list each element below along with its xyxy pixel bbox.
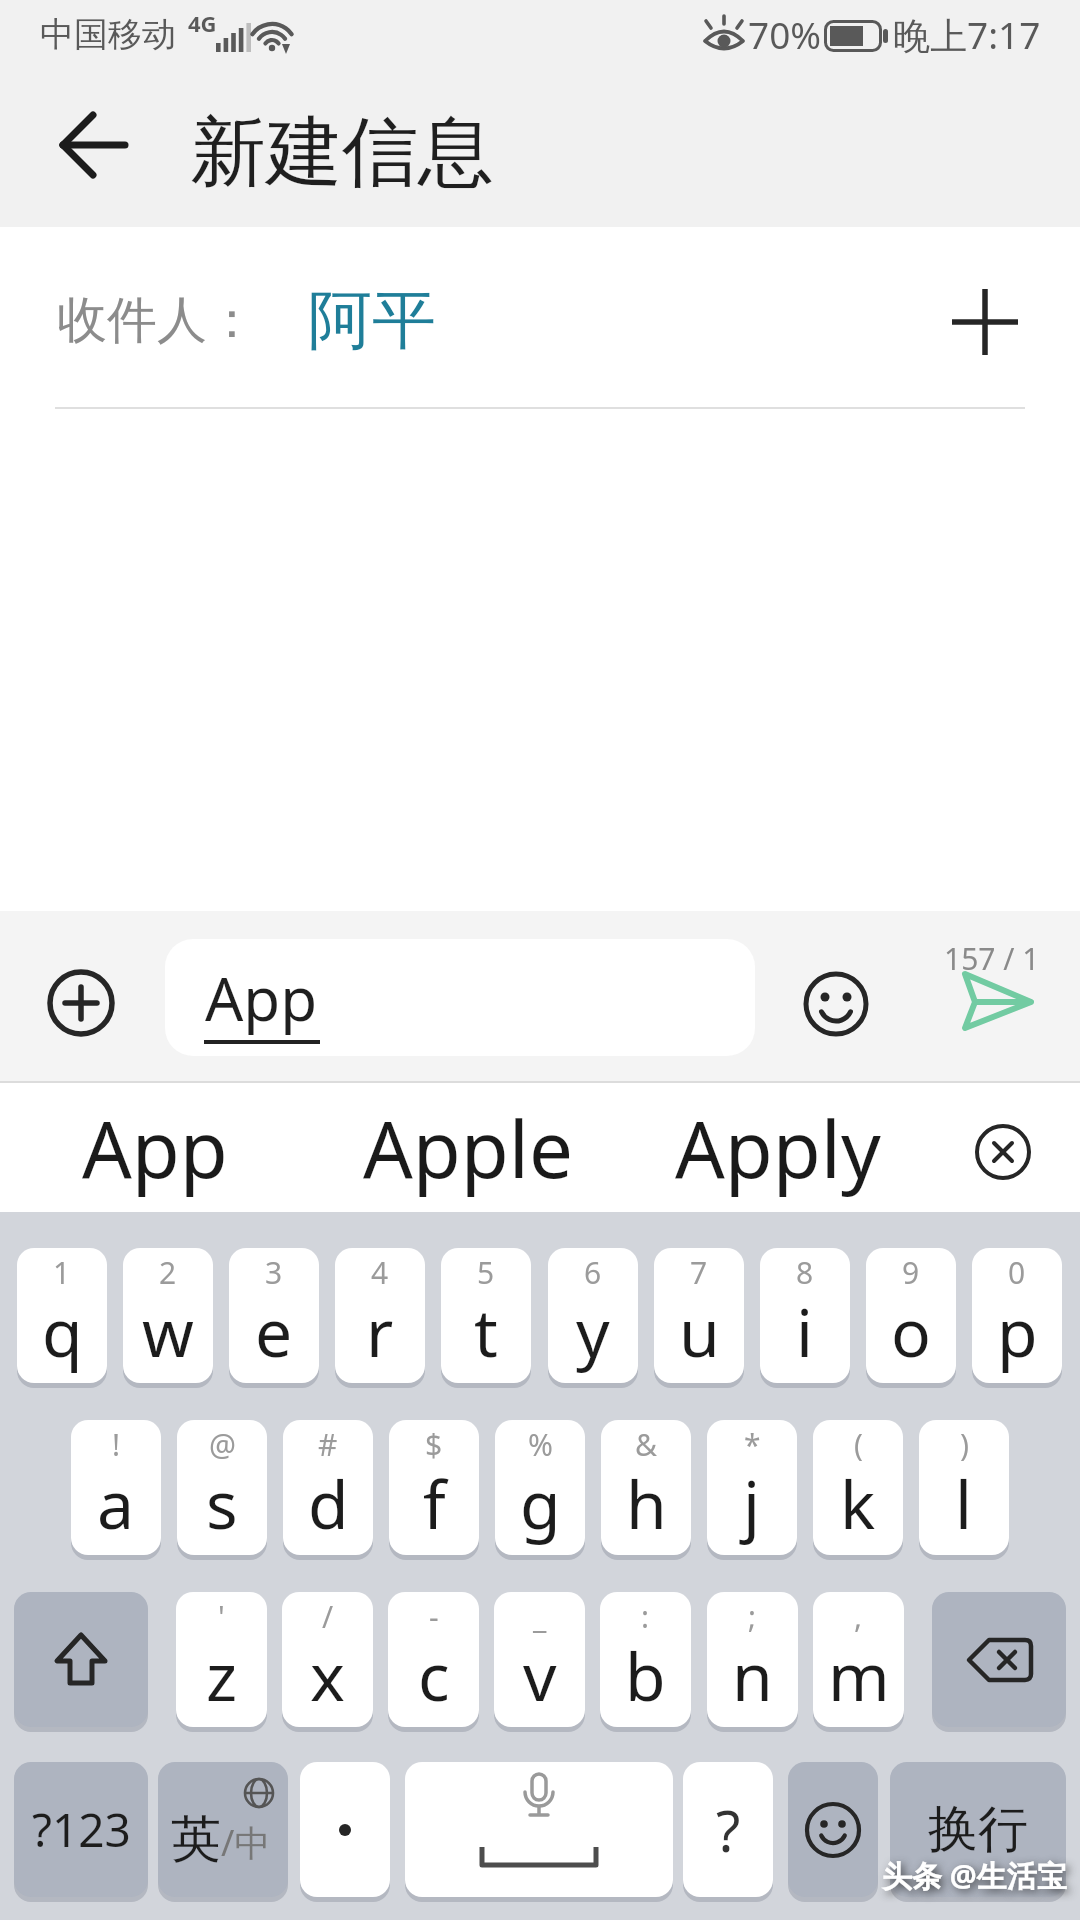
staticText: 5 [477,1252,495,1293]
button[interactable]: Apply [660,1090,895,1205]
button[interactable]: * [707,1420,797,1555]
staticText: Apply [675,1095,881,1201]
button[interactable]: % [495,1420,585,1555]
staticText: 收件人： [57,289,257,352]
button[interactable]: ) [919,1420,1009,1555]
staticText: v [523,1630,557,1720]
button[interactable] [932,1592,1066,1727]
staticText: d [308,1458,349,1548]
staticText: 70% [748,9,822,59]
staticText: # [318,1424,338,1465]
staticText: z [206,1630,238,1720]
button[interactable]: 6 [548,1248,638,1383]
button[interactable] [970,1119,1036,1185]
staticText: k [840,1458,876,1548]
button[interactable] [405,1762,673,1897]
staticText: ! [112,1424,121,1465]
staticText: u [679,1286,720,1376]
staticText: $ [425,1424,443,1465]
button[interactable]: : [600,1592,691,1727]
button[interactable] [945,962,1045,1042]
staticText: 头条 @生活宝 [882,1855,1067,1896]
staticText: 4 [371,1252,389,1293]
button[interactable]: ? [683,1762,773,1897]
button[interactable]: / [282,1592,373,1727]
staticText: 7 [690,1252,708,1293]
staticText: ( [854,1424,863,1465]
staticText: 换行 [928,1798,1028,1861]
button[interactable]: - [388,1592,479,1727]
staticText: 中国移动 [40,13,176,56]
staticText: r [366,1286,394,1376]
button[interactable]: Apple [350,1090,585,1205]
staticText: 6 [584,1252,602,1293]
staticText: @ [209,1424,236,1465]
staticText: 2 [159,1252,177,1293]
staticText: App [205,957,318,1039]
button[interactable]: App [165,939,755,1056]
staticText: / [322,1596,334,1637]
button[interactable]: 3 [229,1248,319,1383]
button[interactable]: 8 [760,1248,850,1383]
button[interactable]: App [55,1090,255,1205]
staticText: i [796,1286,814,1376]
staticText: Apple [363,1095,573,1201]
button[interactable]: & [601,1420,691,1555]
staticText: j [743,1458,761,1548]
button[interactable] [788,1762,878,1897]
button[interactable] [935,272,1035,372]
staticText: t [474,1286,498,1376]
button[interactable]: $ [389,1420,479,1555]
staticText: - [429,1596,439,1637]
staticText: o [891,1286,931,1376]
staticText: x [310,1630,345,1720]
button[interactable]: 换行 [890,1762,1066,1897]
staticText: a [97,1458,135,1548]
button[interactable]: # [283,1420,373,1555]
button[interactable]: ( [813,1420,903,1555]
staticText: n [732,1630,773,1720]
staticText: 晚上7:17 [893,9,1041,60]
button[interactable]: , [813,1592,904,1727]
button[interactable]: 5 [441,1248,531,1383]
staticText: c [418,1630,450,1720]
staticText: & [635,1424,657,1465]
button[interactable]: 0 [972,1248,1062,1383]
button[interactable]: 1 [17,1248,107,1383]
button[interactable] [801,969,871,1039]
staticText: 157 / 1 [944,938,1040,972]
button[interactable] [300,1762,390,1897]
staticText: App [82,1095,228,1201]
staticText: g [520,1458,561,1548]
button[interactable]: 7 [654,1248,744,1383]
staticText: q [42,1286,83,1376]
button[interactable]: 阿平 [308,280,448,360]
button[interactable]: 2 [123,1248,213,1383]
button[interactable]: @ [177,1420,267,1555]
staticText: 0 [1008,1252,1026,1293]
button[interactable] [44,966,118,1040]
button[interactable]: ; [707,1592,798,1727]
staticText: _ [533,1596,547,1637]
staticText: y [576,1286,610,1376]
button[interactable]: _ [494,1592,585,1727]
button[interactable]: ' [176,1592,267,1727]
button[interactable] [14,1592,148,1727]
staticText: : [641,1596,650,1637]
button[interactable]: ?123 [14,1762,148,1897]
staticText: s [206,1458,238,1548]
button[interactable]: ! [71,1420,161,1555]
staticText: 英/中 [171,1808,271,1871]
button[interactable]: 9 [866,1248,956,1383]
staticText: h [626,1458,667,1548]
button[interactable]: 4 [335,1248,425,1383]
button[interactable]: 英/中 [158,1762,288,1897]
button[interactable] [40,105,150,185]
staticText: 1 [53,1252,71,1293]
staticText: b [625,1630,666,1720]
staticText: 阿平 [308,280,436,360]
staticText: e [255,1286,293,1376]
staticText: * [744,1424,761,1465]
staticText: ' [218,1596,225,1637]
staticText: , [854,1596,863,1637]
